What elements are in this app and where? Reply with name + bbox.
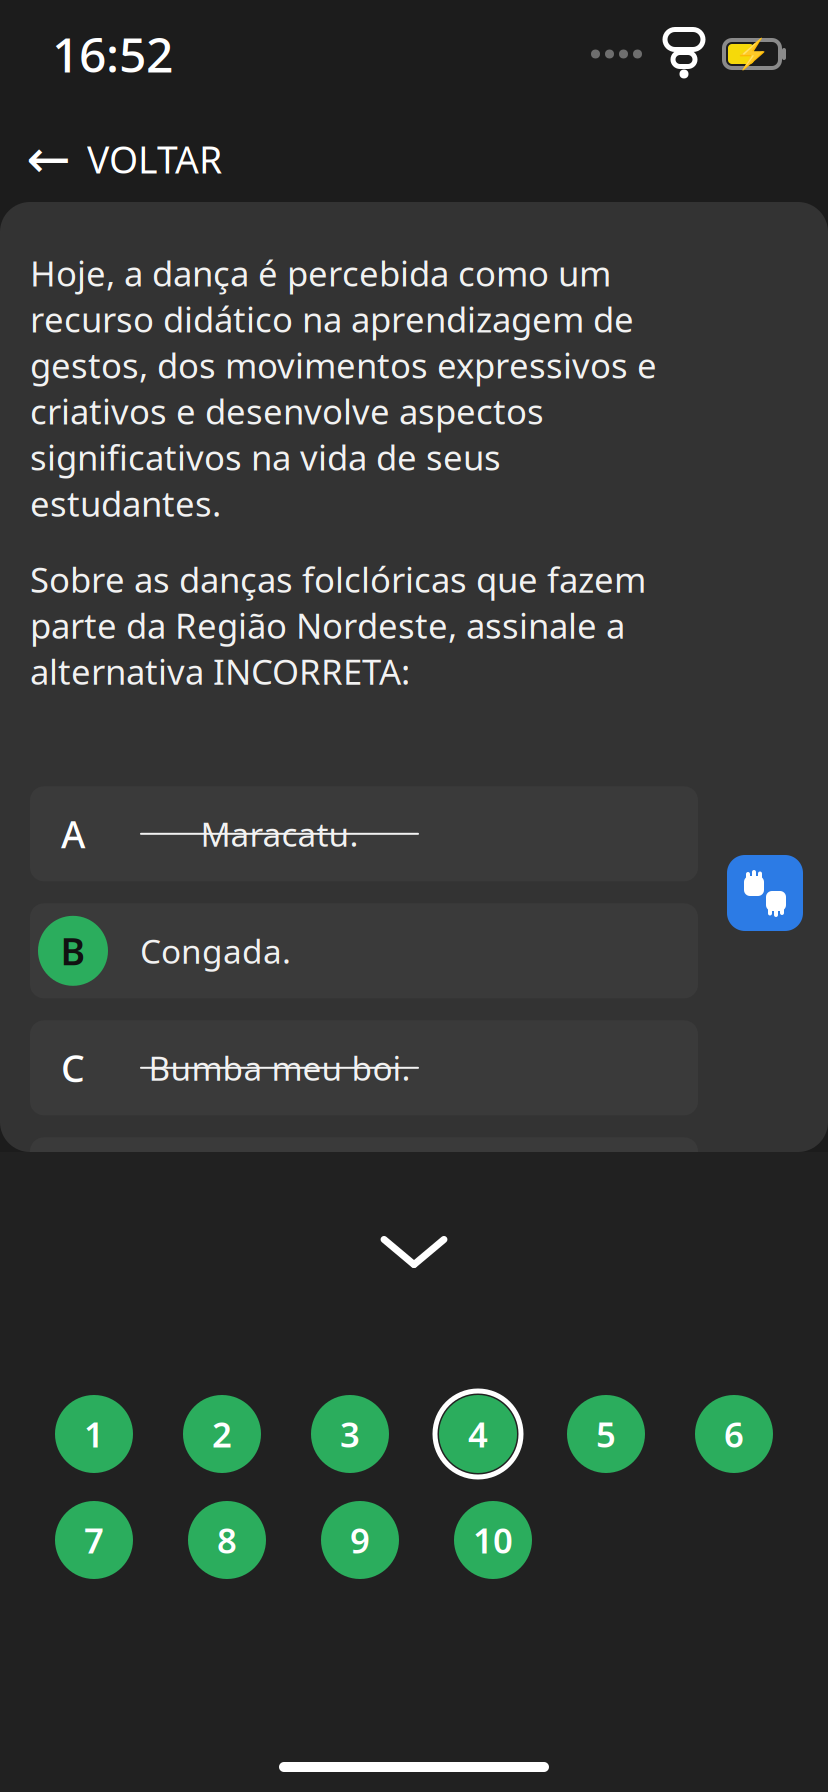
staticText: ←: [26, 129, 71, 189]
button[interactable]: 7: [48, 1494, 140, 1586]
button[interactable]: A: [30, 786, 698, 881]
button[interactable]: 2: [176, 1388, 268, 1480]
button[interactable]: 10: [447, 1494, 539, 1586]
button[interactable]: ←: [0, 113, 246, 205]
staticText: 7: [84, 1517, 104, 1563]
staticText: 16:52: [52, 22, 173, 86]
staticText: 1: [84, 1411, 104, 1457]
staticText: 8: [217, 1517, 237, 1563]
staticText: Congada.: [140, 929, 291, 973]
button[interactable]: 1: [48, 1388, 140, 1480]
staticText: 9: [350, 1517, 370, 1563]
staticText: 5: [596, 1411, 616, 1457]
button[interactable]: B: [30, 903, 698, 998]
button[interactable]: D: [30, 1137, 698, 1232]
button[interactable]: 3: [304, 1388, 396, 1480]
button[interactable]: 5: [560, 1388, 652, 1480]
button[interactable]: 9: [314, 1494, 406, 1586]
staticText: Sobre as danças folclóricas que fazem pa…: [30, 556, 646, 694]
staticText: 2: [212, 1411, 232, 1457]
staticText: 4: [468, 1411, 488, 1457]
staticText: C: [61, 1043, 85, 1093]
button[interactable]: Recolher: [0, 1152, 828, 1352]
button[interactable]: 6: [688, 1388, 780, 1480]
staticText: Maracatu.: [200, 812, 358, 856]
staticText: B: [60, 926, 85, 976]
staticText: A: [61, 809, 85, 859]
staticText: ⚡: [733, 37, 770, 71]
button[interactable]: 8: [181, 1494, 273, 1586]
button[interactable]: C: [30, 1020, 698, 1115]
staticText: 6: [724, 1411, 744, 1457]
button[interactable]: 4: [432, 1388, 524, 1480]
staticText: VOLTAR: [87, 134, 222, 184]
button[interactable]: Tradução em Libras: [727, 855, 803, 931]
staticText: Hoje, a dança é percebida como um recurs…: [30, 250, 657, 526]
staticText: 3: [340, 1411, 360, 1457]
staticText: 10: [473, 1517, 513, 1563]
staticText: Bumba meu boi.: [148, 1046, 410, 1090]
